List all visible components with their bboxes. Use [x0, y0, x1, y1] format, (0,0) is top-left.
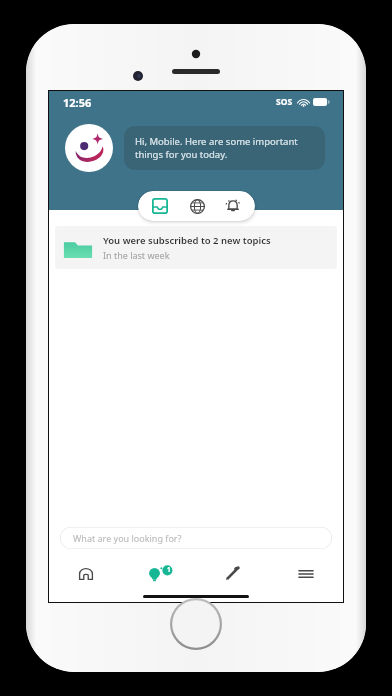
staticText: Hi, Mobile. Here are some important thin… — [135, 135, 314, 161]
button[interactable]: Compose — [195, 559, 269, 589]
button[interactable]: Alerts — [218, 191, 248, 221]
staticText: What are you looking for? — [73, 532, 182, 544]
button[interactable]: Hi, Mobile. Here are some important thin… — [124, 126, 325, 170]
button[interactable]: What are you looking for? — [60, 527, 332, 549]
button[interactable]: Home — [49, 559, 122, 589]
staticText: 1 — [167, 565, 171, 574]
staticText: SOS — [276, 96, 293, 108]
staticText: In the last week — [103, 249, 170, 261]
button[interactable]: Discover — [182, 191, 212, 221]
staticText: 12:56 — [63, 95, 92, 110]
button[interactable]: Menu — [269, 559, 343, 589]
button[interactable]: Insights, 1 new — [122, 559, 195, 589]
button[interactable]: You were subscribed to 2 new topics — [55, 226, 337, 269]
button[interactable]: Inbox — [145, 191, 175, 221]
staticText: You were subscribed to 2 new topics — [103, 234, 271, 247]
